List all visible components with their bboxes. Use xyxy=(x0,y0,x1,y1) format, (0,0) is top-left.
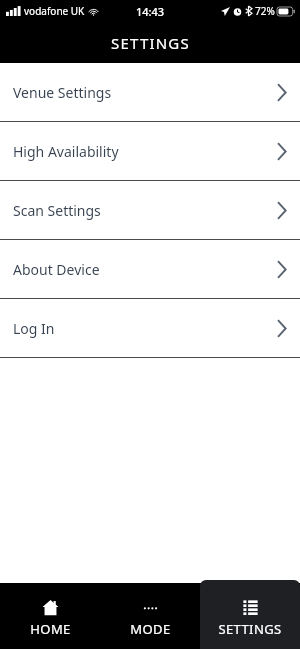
staticText: vodafone UK xyxy=(24,4,85,18)
other: HOME xyxy=(42,599,59,616)
staticText: Venue Settings xyxy=(13,83,276,102)
staticText: SETTINGS xyxy=(218,620,282,638)
staticText: Log In xyxy=(13,319,276,338)
staticText: SETTINGS xyxy=(111,33,190,53)
staticText: Scan Settings xyxy=(13,201,276,220)
button[interactable]: Venue Settings xyxy=(0,63,300,121)
button[interactable]: Scan Settings xyxy=(0,181,300,239)
button[interactable]: Log In xyxy=(0,299,300,357)
other: MODE xyxy=(142,599,159,616)
staticText: High Availability xyxy=(13,142,276,161)
staticText: 14:43 xyxy=(136,4,165,19)
button[interactable]: About Device xyxy=(0,240,300,298)
staticText: About Device xyxy=(13,260,276,279)
button[interactable]: SETTINGS xyxy=(200,580,300,649)
button[interactable]: MODE xyxy=(100,580,200,649)
staticText: MODE xyxy=(130,620,171,638)
staticText: HOME xyxy=(30,620,71,638)
button[interactable]: HOME xyxy=(0,580,100,649)
button[interactable]: High Availability xyxy=(0,122,300,180)
staticText: 72% xyxy=(255,4,275,18)
other: SETTINGS xyxy=(242,599,259,616)
